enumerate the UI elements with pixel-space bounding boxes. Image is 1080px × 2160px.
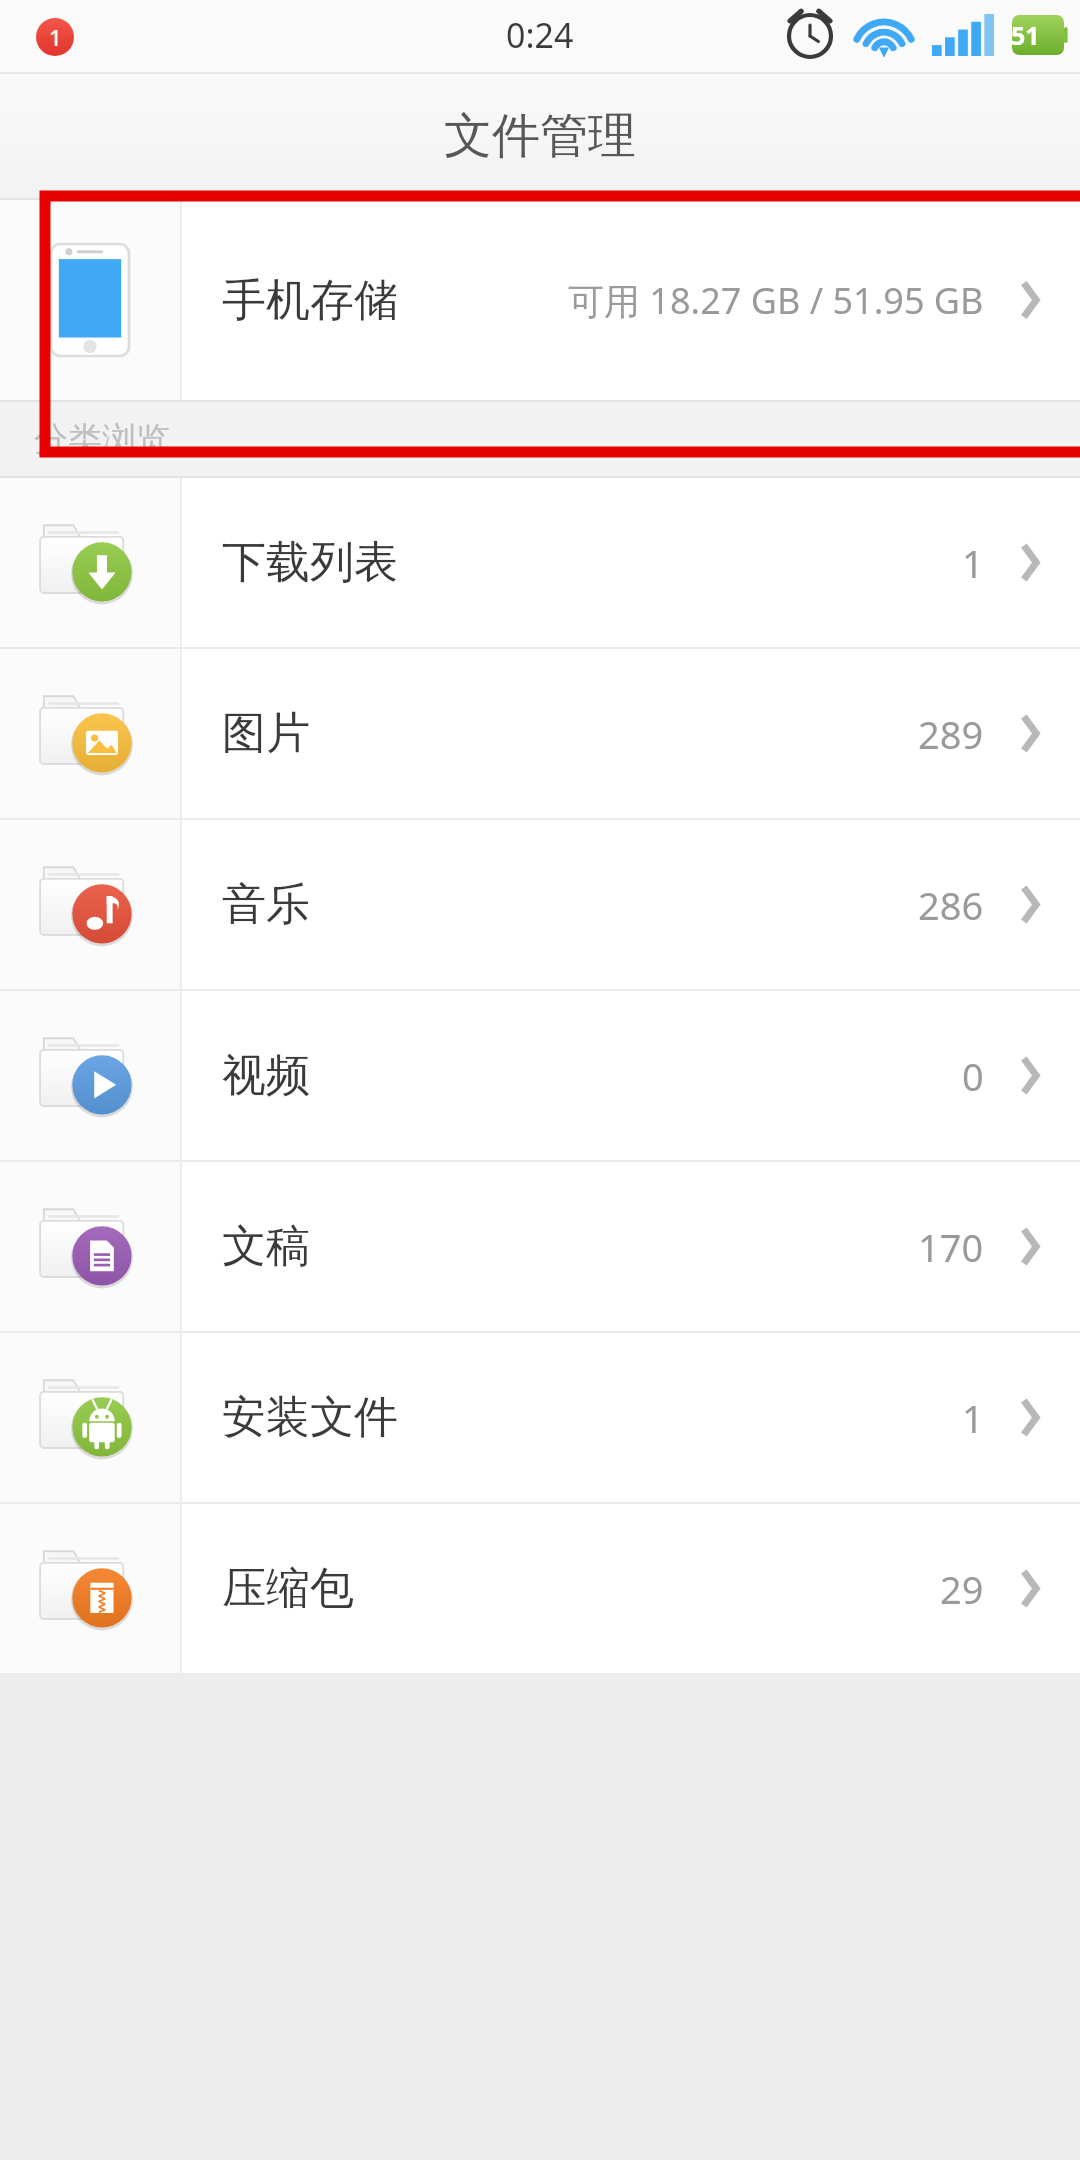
staticText: 0:24 bbox=[506, 12, 574, 58]
staticText: 289 bbox=[918, 708, 984, 760]
staticText: 文稿 bbox=[222, 1219, 310, 1274]
staticText: 手机存储 bbox=[222, 273, 398, 328]
button[interactable]: 视频 bbox=[0, 991, 1080, 1160]
staticText: 1 bbox=[49, 22, 62, 52]
staticText: 安装文件 bbox=[222, 1390, 398, 1445]
staticText: 图片 bbox=[222, 706, 310, 761]
staticText: 0 bbox=[962, 1050, 984, 1102]
button[interactable]: 安装文件 bbox=[0, 1333, 1080, 1502]
staticText: 压缩包 bbox=[222, 1561, 354, 1616]
staticText: 文件管理 bbox=[444, 106, 636, 166]
button[interactable]: 音乐 bbox=[0, 820, 1080, 989]
staticText: 音乐 bbox=[222, 877, 310, 932]
staticText: 1 bbox=[962, 537, 984, 589]
button[interactable]: 下载列表 bbox=[0, 478, 1080, 647]
button[interactable]: 手机存储 bbox=[0, 200, 1080, 400]
staticText: 下载列表 bbox=[222, 535, 398, 590]
button[interactable]: 图片 bbox=[0, 649, 1080, 818]
staticText: 可用 18.27 GB / 51.95 GB bbox=[568, 276, 984, 325]
button[interactable]: 压缩包 bbox=[0, 1504, 1080, 1673]
staticText: 分类浏览 bbox=[34, 418, 170, 461]
staticText: 视频 bbox=[222, 1048, 310, 1103]
staticText: 29 bbox=[940, 1563, 984, 1615]
button[interactable]: 文稿 bbox=[0, 1162, 1080, 1331]
staticText: 51 bbox=[1011, 18, 1040, 52]
staticText: 170 bbox=[918, 1221, 984, 1273]
staticText: 286 bbox=[918, 879, 984, 931]
staticText: 1 bbox=[962, 1392, 984, 1444]
